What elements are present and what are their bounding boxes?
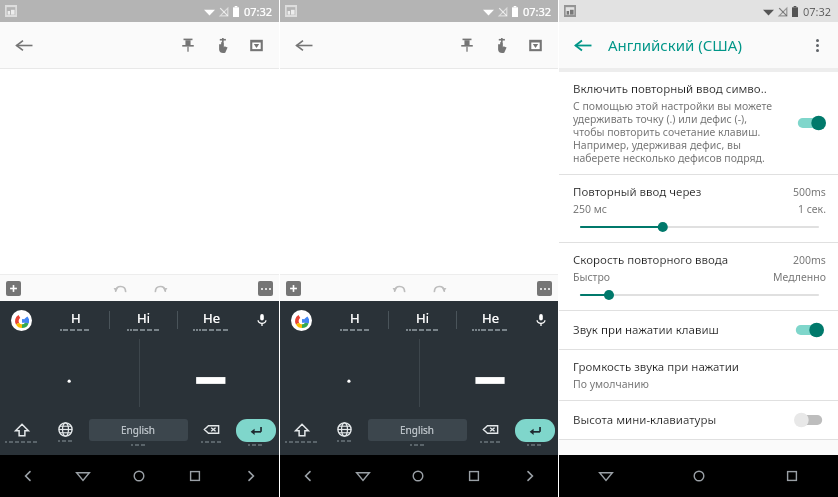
button[interactable]: Language [44, 407, 87, 453]
button[interactable]: Undo [386, 275, 412, 301]
button[interactable]: Google [0, 301, 42, 339]
staticText: 07:32 [523, 4, 552, 19]
staticText: Hi [137, 309, 150, 327]
button[interactable]: H [322, 301, 388, 339]
staticText: Высота мини-клавиатуры [573, 412, 794, 428]
button[interactable]: Touch [484, 28, 518, 62]
staticText: 1 сек. [798, 202, 826, 216]
button[interactable]: English [89, 414, 188, 446]
staticText: С помощью этой настройки вы можете удерж… [573, 99, 772, 165]
button[interactable]: Pin [450, 28, 484, 62]
button[interactable]: Next [502, 455, 558, 497]
button[interactable]: Hide keyboard [335, 455, 390, 497]
staticText: 200ms [793, 253, 826, 267]
button[interactable]: Enter [515, 414, 555, 446]
button[interactable]: Save [239, 28, 273, 62]
button[interactable]: Touch [205, 28, 239, 62]
button[interactable]: He [457, 301, 524, 339]
staticText: 07:32 [803, 4, 832, 19]
button[interactable]: Redo [147, 275, 173, 301]
staticText: 250 мс [573, 202, 798, 216]
button[interactable]: Звук при нажатии клавиш [559, 311, 838, 349]
staticText: English [400, 423, 435, 437]
button[interactable]: Redo [426, 275, 452, 301]
button[interactable]: Повторный ввод через [559, 175, 838, 242]
button[interactable]: Hi [389, 301, 456, 339]
button[interactable]: Back [567, 29, 599, 61]
button[interactable]: More options [537, 281, 552, 296]
button[interactable]: Hide keyboard [559, 455, 652, 497]
staticText: 500ms [793, 185, 826, 199]
button[interactable]: Recents [167, 455, 223, 497]
staticText: Hi [416, 309, 429, 327]
button[interactable]: Home [390, 455, 446, 497]
button[interactable]: Recents [446, 455, 502, 497]
button[interactable]: Language [323, 407, 366, 453]
staticText: 07:32 [244, 4, 273, 19]
button[interactable]: Previous [280, 455, 335, 497]
staticText: Звук при нажатии клавиш [573, 322, 794, 338]
button[interactable]: Hide keyboard [55, 455, 111, 497]
button[interactable]: More options [802, 30, 832, 60]
button[interactable]: Home [652, 455, 745, 497]
staticText: Медленно [773, 270, 826, 284]
button[interactable]: Скорость повторного ввода [559, 243, 838, 310]
button[interactable]: Pin [171, 28, 205, 62]
button[interactable]: Add [286, 281, 301, 296]
button[interactable]: Voice input [524, 301, 558, 339]
staticText: Быстро [573, 270, 773, 284]
staticText: H [71, 309, 81, 327]
button[interactable]: Add [6, 281, 21, 296]
staticText: H [350, 309, 360, 327]
button[interactable]: Включить повторный ввод симво.. [559, 72, 838, 174]
button[interactable]: H [42, 301, 109, 339]
button[interactable]: Shift [280, 407, 323, 453]
button[interactable]: Backspace [469, 407, 512, 453]
button[interactable] [794, 322, 824, 338]
staticText: He [482, 309, 499, 327]
button[interactable]: Undo [107, 275, 133, 301]
button[interactable] [796, 115, 826, 131]
button[interactable]: Previous [0, 455, 55, 497]
staticText: English [121, 423, 156, 437]
staticText: He [203, 309, 220, 327]
button[interactable]: Back [8, 29, 40, 61]
button[interactable]: English [368, 414, 467, 446]
button[interactable]: Save [518, 28, 552, 62]
staticText: Английский (США) [608, 35, 742, 55]
staticText: По умолчанию [573, 377, 649, 391]
button[interactable]: Высота мини-клавиатуры [559, 401, 838, 439]
button[interactable] [794, 412, 824, 428]
button[interactable]: He [178, 301, 245, 339]
button[interactable]: More options [258, 281, 273, 296]
button[interactable]: Hi [110, 301, 177, 339]
button[interactable]: Громкость звука при нажатии [559, 350, 838, 400]
button[interactable]: Google [280, 301, 322, 339]
button[interactable]: Enter [236, 414, 276, 446]
staticText: Громкость звука при нажатии [573, 359, 739, 375]
staticText: Повторный ввод через [573, 184, 793, 200]
button[interactable]: Shift [0, 407, 44, 453]
button[interactable]: Recents [745, 455, 838, 497]
button[interactable]: Voice input [245, 301, 279, 339]
button[interactable]: Next [223, 455, 279, 497]
button[interactable]: Backspace [190, 407, 233, 453]
button[interactable]: Back [288, 29, 320, 61]
staticText: Скорость повторного ввода [573, 252, 793, 268]
button[interactable]: Home [111, 455, 167, 497]
staticText: Включить повторный ввод симво.. [573, 81, 767, 97]
